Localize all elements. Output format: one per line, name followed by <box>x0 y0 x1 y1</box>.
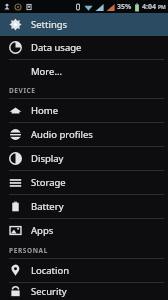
staticText: Apps <box>31 224 54 237</box>
staticText: Home <box>31 104 59 117</box>
staticText: 35% <box>117 2 132 12</box>
button[interactable]: Data usage <box>0 36 168 59</box>
button[interactable]: Apps <box>0 219 168 242</box>
staticText: DEVICE <box>9 86 36 95</box>
staticText: Data usage <box>31 41 82 54</box>
staticText: Settings <box>31 18 68 31</box>
button[interactable]: Security <box>0 283 168 300</box>
button[interactable]: Location <box>0 259 168 282</box>
staticText: Security <box>31 285 67 298</box>
button[interactable]: Battery <box>0 195 168 218</box>
staticText: More... <box>31 65 63 78</box>
button[interactable]: Audio profiles <box>0 123 168 146</box>
staticText: Display <box>31 152 64 165</box>
button[interactable]: Display <box>0 147 168 170</box>
staticText: PERSONAL <box>9 246 48 255</box>
staticText: Audio profiles <box>31 128 93 141</box>
staticText: 4:04 <box>142 2 156 12</box>
button[interactable]: Home <box>0 99 168 122</box>
button[interactable]: Settings <box>0 13 168 36</box>
staticText: Storage <box>31 176 66 189</box>
staticText: Battery <box>31 200 64 213</box>
button[interactable]: Storage <box>0 171 168 194</box>
button[interactable]: More... <box>0 60 168 82</box>
staticText: PM <box>158 4 166 11</box>
staticText: Location <box>31 264 70 277</box>
